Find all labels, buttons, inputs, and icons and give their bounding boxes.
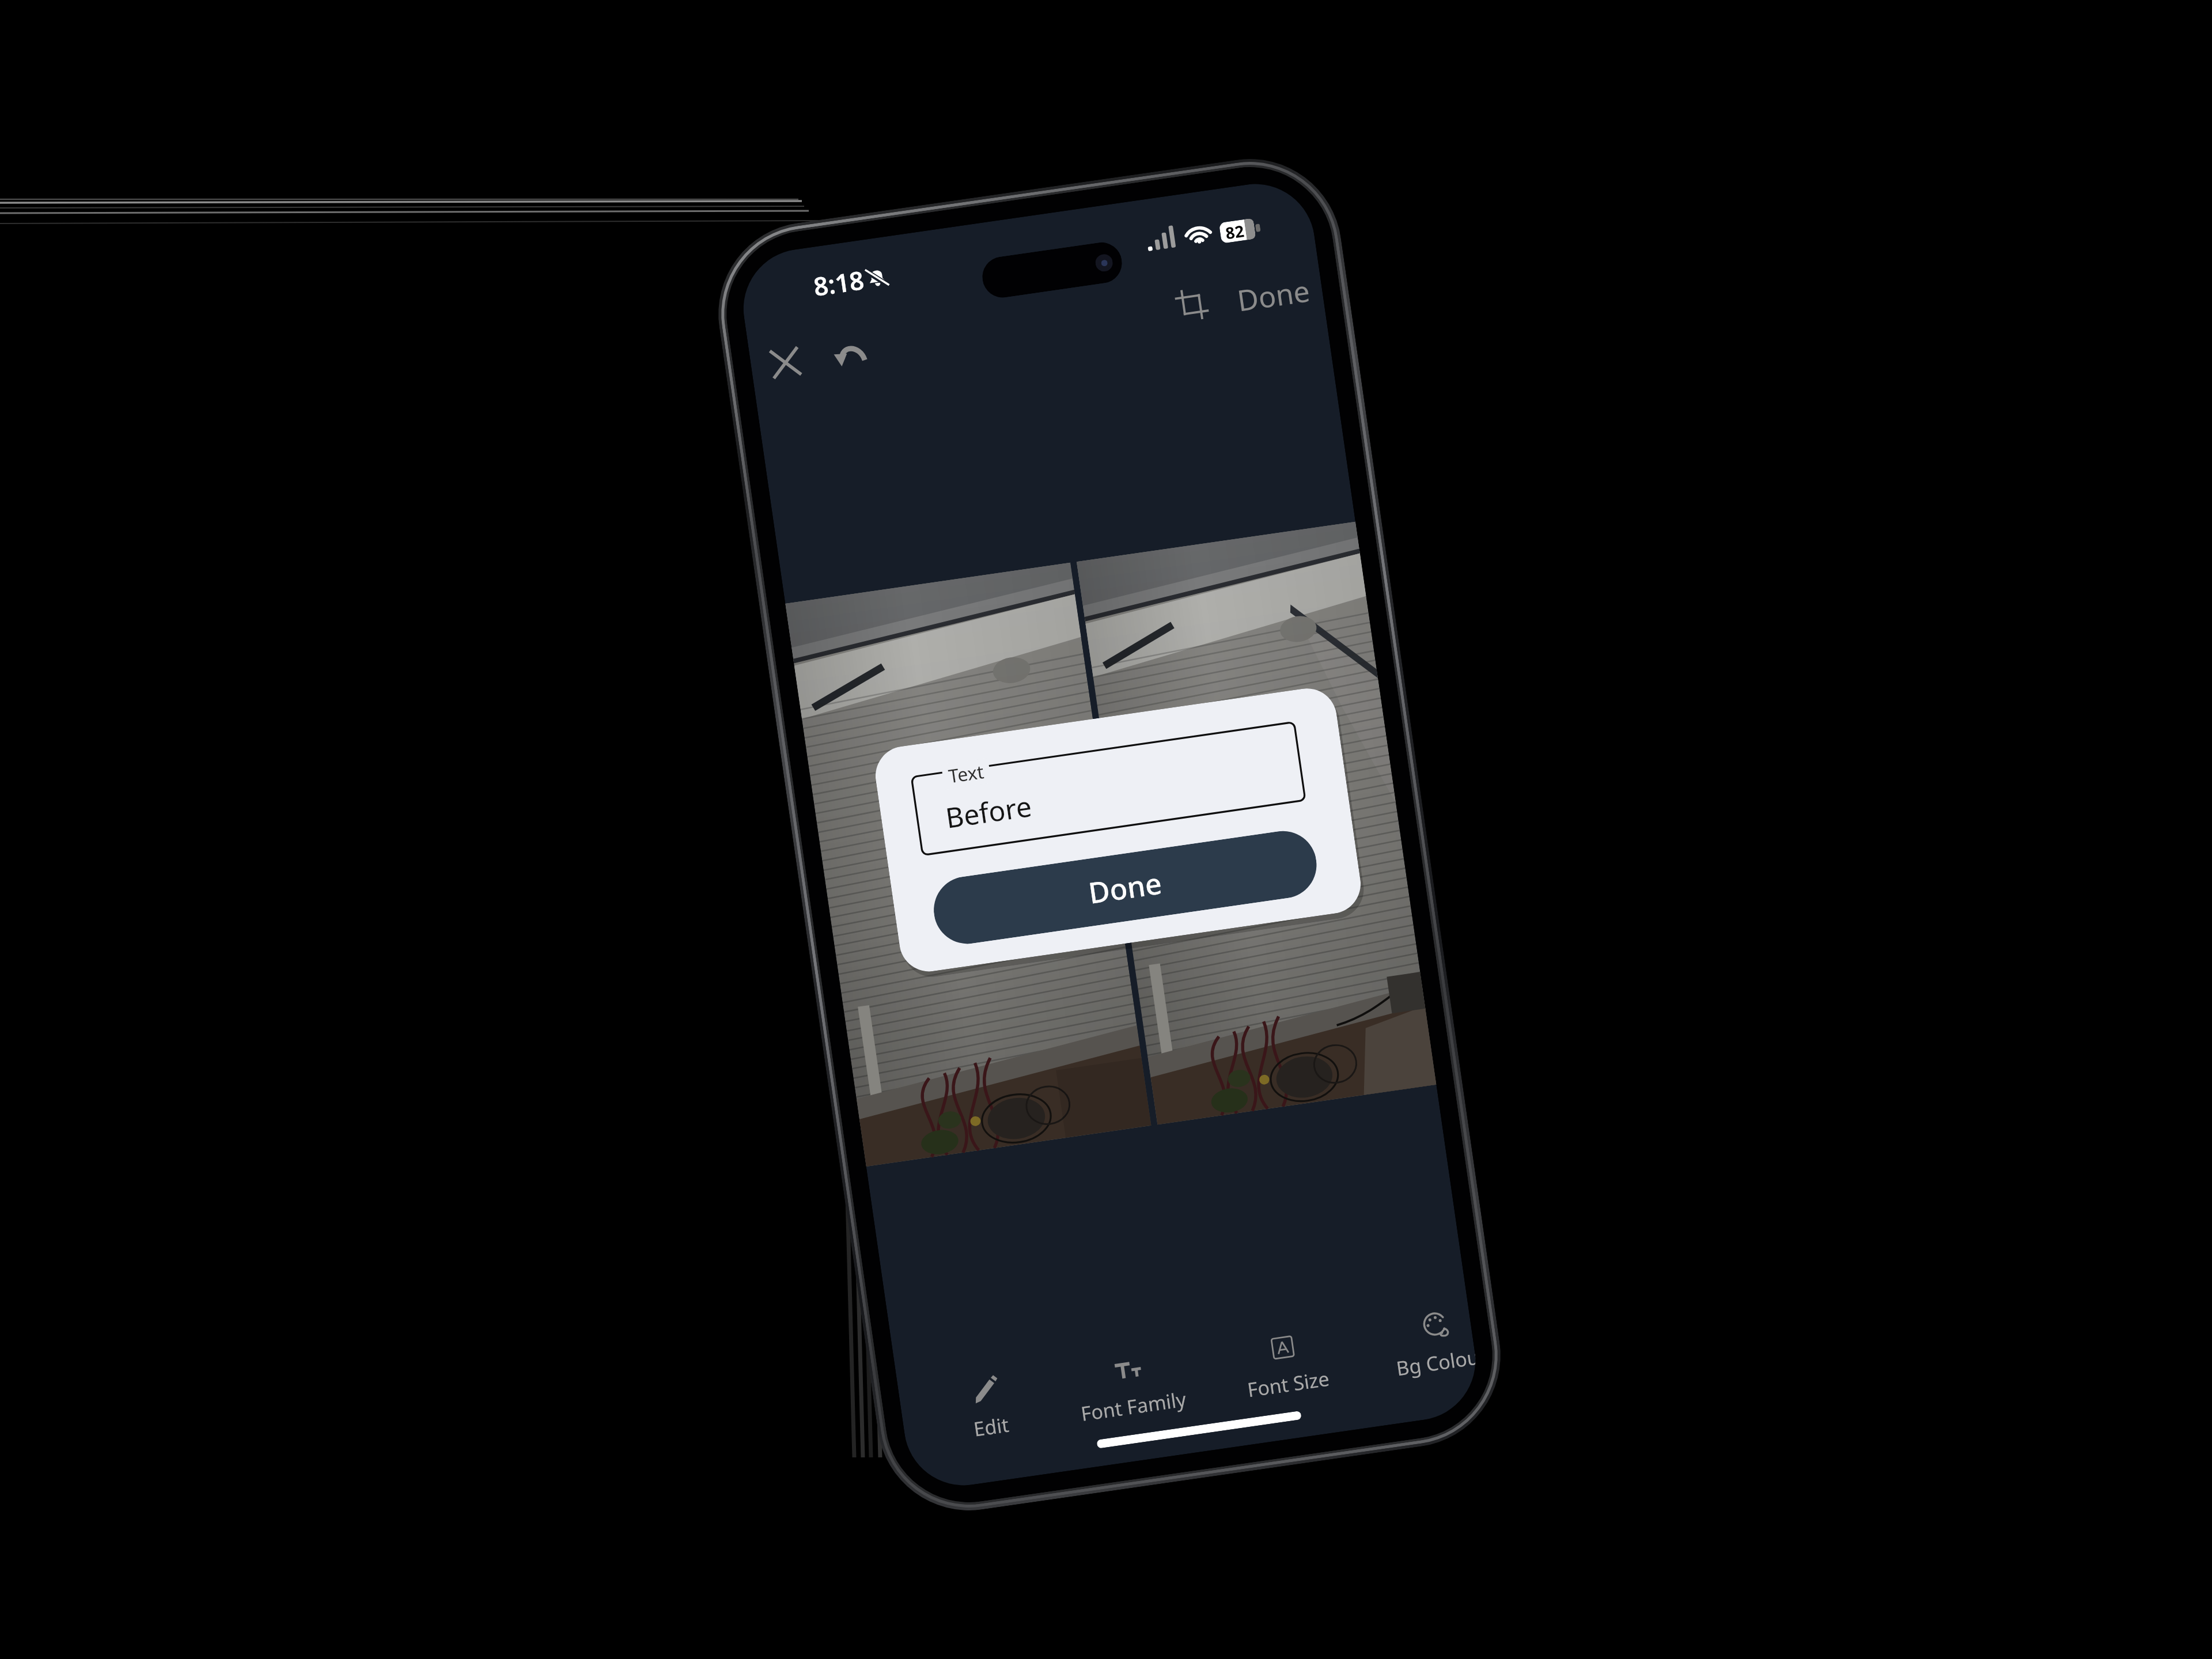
staticText: Before	[943, 787, 1034, 836]
button[interactable]: Done	[929, 827, 1321, 948]
button[interactable]: Font Family	[1043, 1340, 1219, 1437]
button[interactable]: Font Size	[1197, 1317, 1373, 1415]
button[interactable]: Close	[757, 334, 814, 391]
staticText: Bg Colour	[1394, 1344, 1477, 1382]
button[interactable]: Bg Colour	[1351, 1302, 1478, 1393]
button[interactable]: Edit	[900, 1360, 1076, 1458]
button[interactable]: Done	[1224, 265, 1323, 326]
staticText: Done	[1235, 271, 1312, 320]
staticText: Edit	[972, 1411, 1010, 1442]
button[interactable]: Undo	[821, 327, 878, 384]
staticText: Done	[1086, 863, 1165, 912]
staticText: Font Family	[1079, 1386, 1188, 1427]
staticText: Text	[947, 759, 986, 789]
button[interactable]: Crop	[1163, 276, 1220, 333]
staticText: 82	[1224, 220, 1246, 243]
staticText: Font Size	[1246, 1365, 1331, 1403]
staticText: 8:18	[811, 262, 866, 304]
